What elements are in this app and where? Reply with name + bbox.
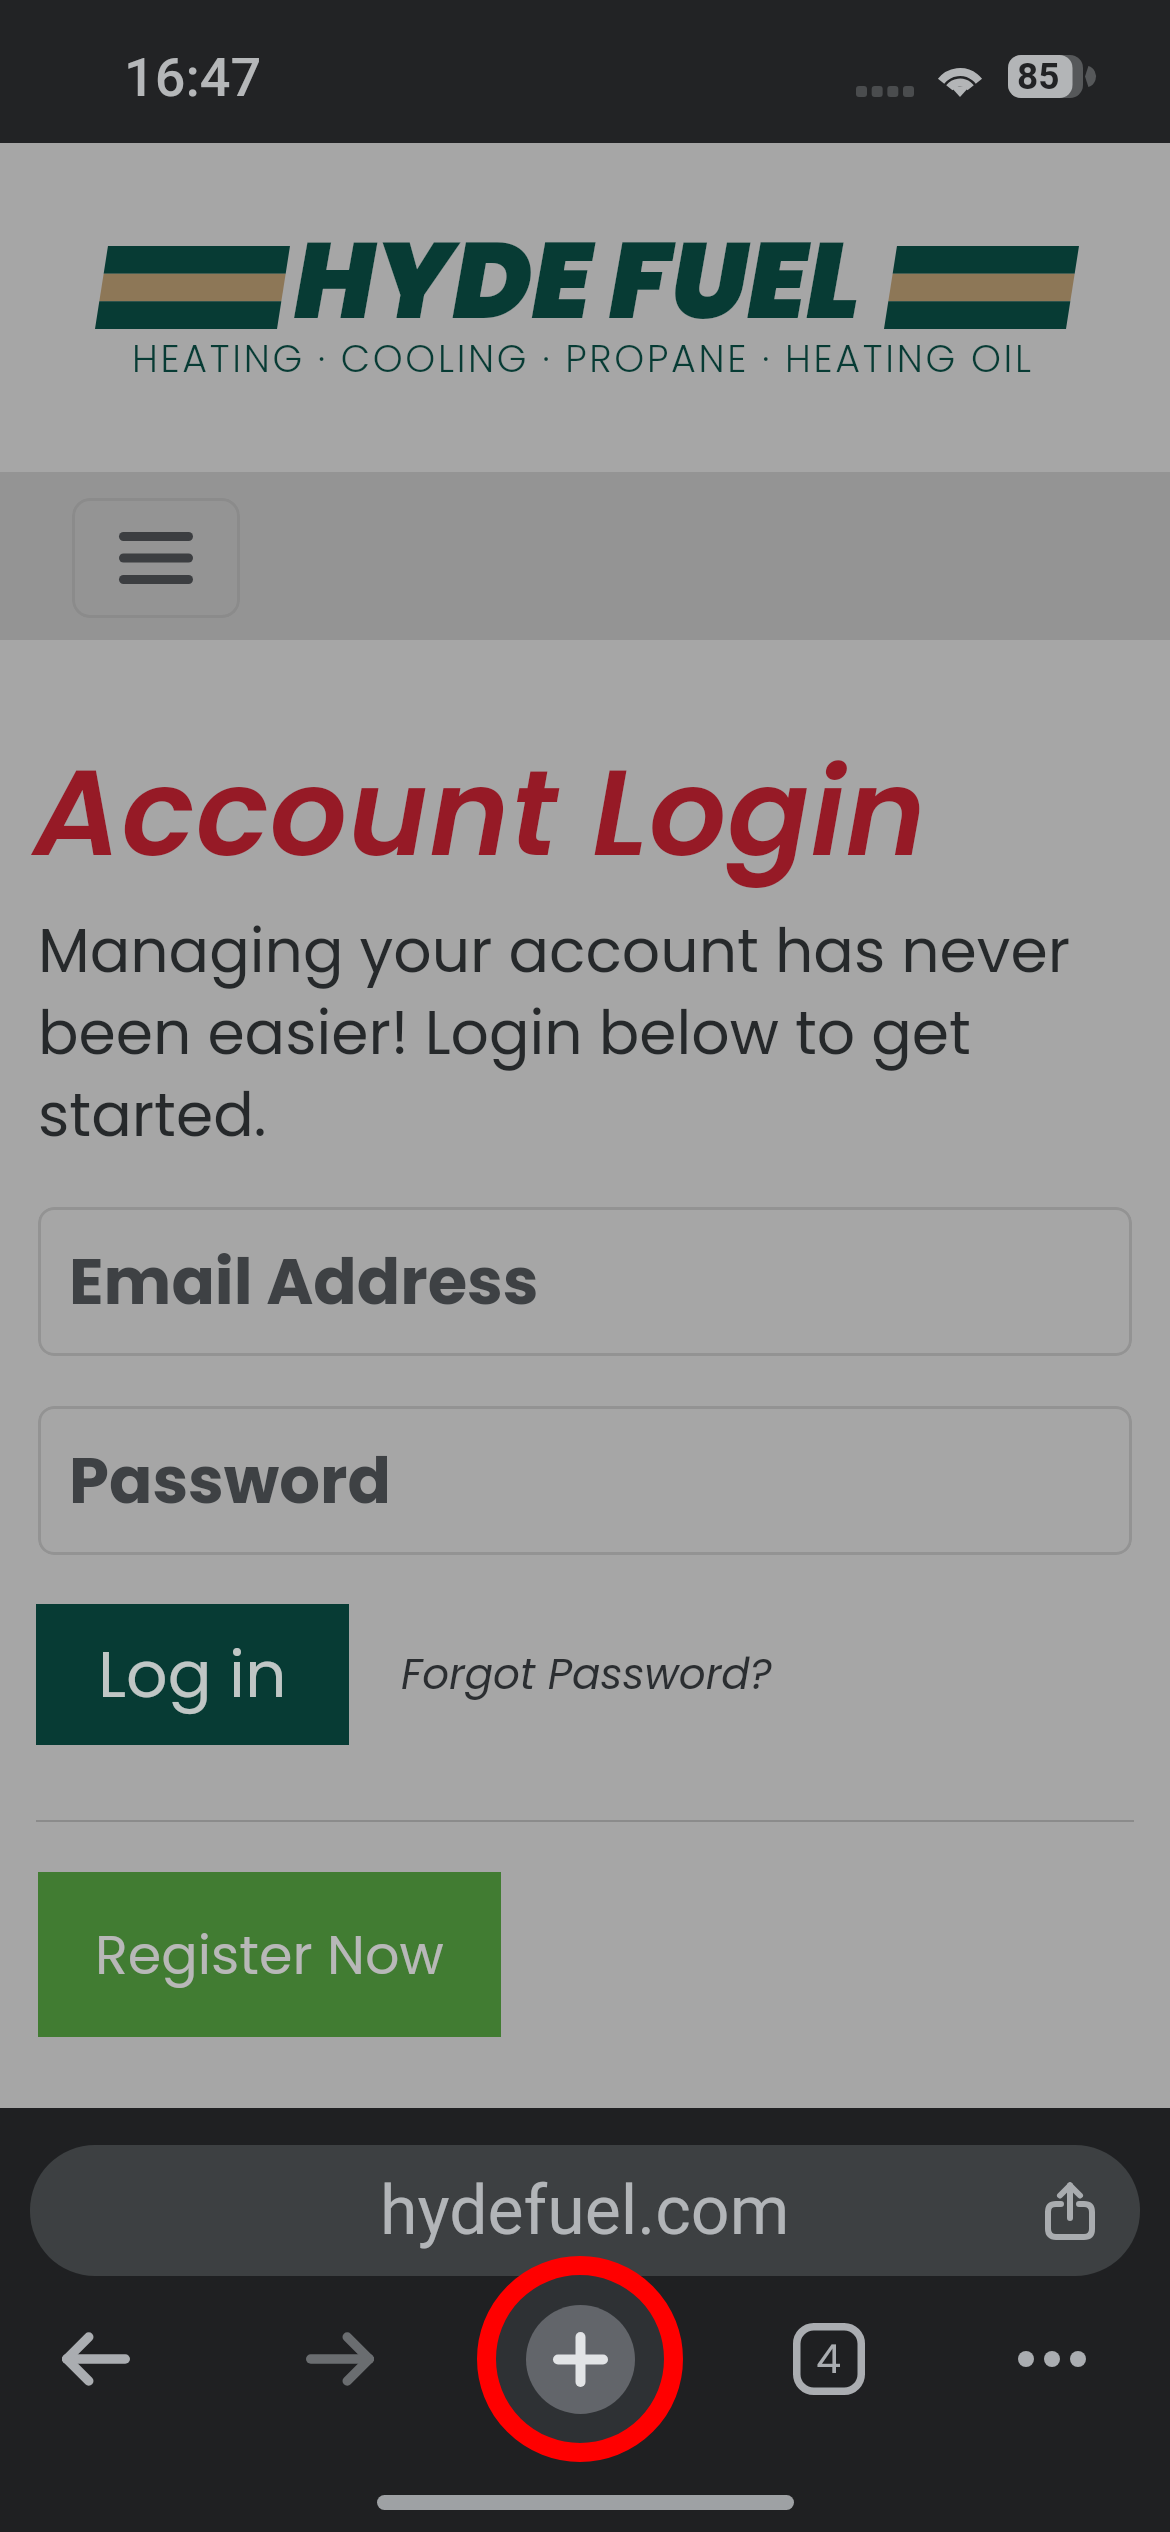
button[interactable]: Password bbox=[38, 1406, 1132, 1555]
button[interactable]: More bbox=[935, 2249, 1169, 2469]
staticText: Password bbox=[69, 1436, 391, 1526]
button[interactable]: Menu bbox=[72, 498, 240, 618]
button[interactable]: Share bbox=[1040, 2181, 1100, 2241]
button[interactable]: hydefuel.com bbox=[30, 2145, 1140, 2276]
button[interactable]: Tabs bbox=[712, 2249, 946, 2469]
staticText: HYDE FUEL bbox=[294, 206, 861, 356]
button[interactable]: Forgot Password? bbox=[401, 1645, 772, 1704]
staticText: 4 bbox=[816, 2331, 842, 2387]
button[interactable]: Log in bbox=[36, 1604, 349, 1745]
button[interactable]: Forward bbox=[223, 2249, 457, 2469]
button[interactable]: Back bbox=[0, 2249, 213, 2469]
staticText: 16:47 bbox=[124, 46, 262, 109]
button[interactable]: New tab bbox=[463, 2249, 697, 2469]
staticText: HEATING · COOLING · PROPANE · HEATING OI… bbox=[132, 332, 1034, 385]
staticText: Register Now bbox=[95, 1917, 444, 1993]
staticText: Log in bbox=[98, 1629, 287, 1720]
button[interactable]: Email Address bbox=[38, 1207, 1132, 1356]
staticText: 85 bbox=[1017, 55, 1060, 98]
staticText: Account Login bbox=[34, 728, 927, 897]
staticText: hydefuel.com bbox=[380, 2171, 790, 2251]
button[interactable]: Register Now bbox=[38, 1872, 501, 2037]
staticText: Managing your account has never been eas… bbox=[38, 909, 1142, 1157]
staticText: Email Address bbox=[69, 1237, 539, 1327]
